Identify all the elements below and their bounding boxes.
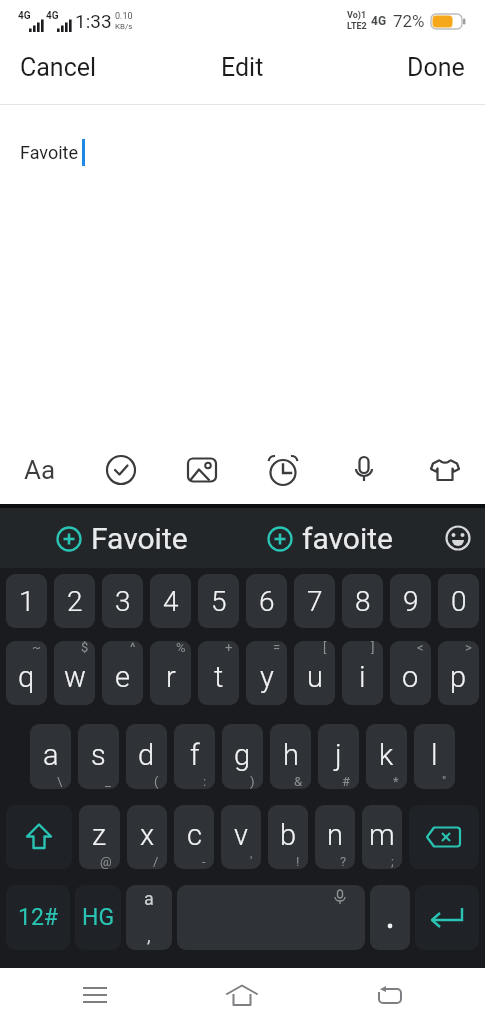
button[interactable]: # — [318, 724, 359, 789]
staticText: 4G — [46, 10, 59, 22]
staticText: b — [280, 818, 297, 852]
button[interactable]: * — [366, 724, 407, 789]
staticText: p — [450, 660, 467, 694]
staticText: Vo)1 — [347, 10, 367, 21]
staticText: d — [138, 738, 155, 772]
staticText: f — [190, 738, 200, 772]
button[interactable] — [21, 968, 168, 1024]
button[interactable]: " — [414, 724, 455, 789]
button[interactable]: ^ — [102, 641, 143, 705]
button[interactable]: > — [438, 641, 479, 705]
button[interactable]: % — [150, 641, 191, 705]
button[interactable]: 9 — [390, 574, 431, 628]
button[interactable]: 2 — [54, 574, 95, 628]
button[interactable]: / — [127, 805, 167, 869]
staticText: 8 — [355, 585, 371, 618]
staticText: x — [140, 818, 155, 852]
staticText: s — [91, 738, 106, 772]
staticText: a — [43, 738, 59, 772]
button[interactable]: Cancel — [20, 53, 97, 82]
button[interactable] — [415, 885, 479, 950]
button[interactable] — [409, 805, 479, 869]
button[interactable]: 8 — [342, 574, 383, 628]
staticText: - — [202, 854, 206, 869]
button[interactable]: - — [174, 805, 214, 869]
staticText: + — [225, 641, 233, 655]
button[interactable]: 12# — [6, 885, 70, 950]
staticText: 4G — [371, 14, 387, 28]
button[interactable]: 7 — [294, 574, 335, 628]
staticText: % — [176, 641, 186, 655]
button[interactable] — [404, 442, 485, 498]
button[interactable]: \ — [30, 724, 71, 789]
staticText: r — [166, 660, 176, 694]
staticText: u — [307, 660, 323, 694]
button[interactable]: < — [390, 641, 431, 705]
staticText: ( — [154, 774, 159, 789]
staticText: ] — [371, 641, 375, 655]
button[interactable]: Favoite — [56, 521, 188, 556]
button[interactable] — [80, 442, 161, 498]
button[interactable] — [161, 442, 242, 498]
button[interactable]: 5 — [198, 574, 239, 628]
button[interactable]: ? — [315, 805, 355, 869]
button[interactable]: @ — [79, 805, 120, 869]
staticText: q — [18, 660, 35, 694]
button[interactable]: [ — [294, 641, 335, 705]
button[interactable]: 6 — [246, 574, 287, 628]
button[interactable]: $ — [54, 641, 95, 705]
button[interactable]: 3 — [102, 574, 143, 628]
staticText: l — [431, 738, 438, 772]
button[interactable]: ] — [342, 641, 383, 705]
staticText: Aa — [24, 455, 56, 485]
staticText: 1:33 — [75, 10, 112, 32]
button[interactable] — [6, 805, 72, 869]
button[interactable]: ( — [126, 724, 167, 789]
staticText: 4 — [163, 585, 179, 618]
staticText: @ — [100, 854, 112, 869]
button[interactable]: & — [270, 724, 311, 789]
button[interactable] — [168, 968, 316, 1024]
button[interactable]: 4 — [150, 574, 191, 628]
button[interactable]: ' — [221, 805, 261, 869]
button[interactable]: HG — [75, 885, 121, 950]
button[interactable]: favoite — [267, 521, 393, 556]
staticText: _ — [105, 774, 111, 789]
button[interactable]: Aa — [0, 442, 80, 498]
staticText: i — [359, 660, 366, 694]
staticText: 1 — [19, 585, 35, 618]
button[interactable]: : — [174, 724, 215, 789]
staticText: 72% — [393, 11, 425, 31]
button[interactable]: Done — [407, 53, 465, 82]
button[interactable]: + — [198, 641, 239, 705]
staticText: / — [153, 854, 159, 869]
staticText: 12# — [18, 904, 59, 931]
staticText: ? — [340, 854, 347, 869]
staticText: Cancel — [20, 53, 97, 82]
button[interactable]: ) — [222, 724, 263, 789]
staticText: Edit — [221, 53, 264, 82]
button[interactable]: ! — [268, 805, 308, 869]
button[interactable] — [177, 885, 365, 950]
staticText: w — [64, 660, 86, 694]
staticText: > — [465, 641, 472, 655]
button[interactable]: Edit — [221, 53, 264, 82]
button[interactable]: a — [126, 885, 172, 950]
button[interactable] — [323, 442, 404, 498]
button[interactable] — [316, 968, 464, 1024]
staticText: , — [147, 925, 151, 946]
staticText: m — [369, 818, 395, 852]
staticText: a — [144, 888, 154, 909]
staticText: = — [273, 641, 281, 655]
button[interactable]: ; — [362, 805, 402, 869]
button[interactable]: 0 — [438, 574, 479, 628]
button[interactable]: 1 — [6, 574, 47, 628]
button[interactable] — [242, 442, 323, 498]
button[interactable]: ~ — [6, 641, 47, 705]
button[interactable] — [370, 885, 410, 950]
button[interactable] — [445, 525, 471, 551]
button[interactable]: _ — [78, 724, 119, 789]
button[interactable]: = — [246, 641, 287, 705]
staticText: : — [203, 774, 207, 789]
staticText: ~ — [32, 641, 41, 655]
